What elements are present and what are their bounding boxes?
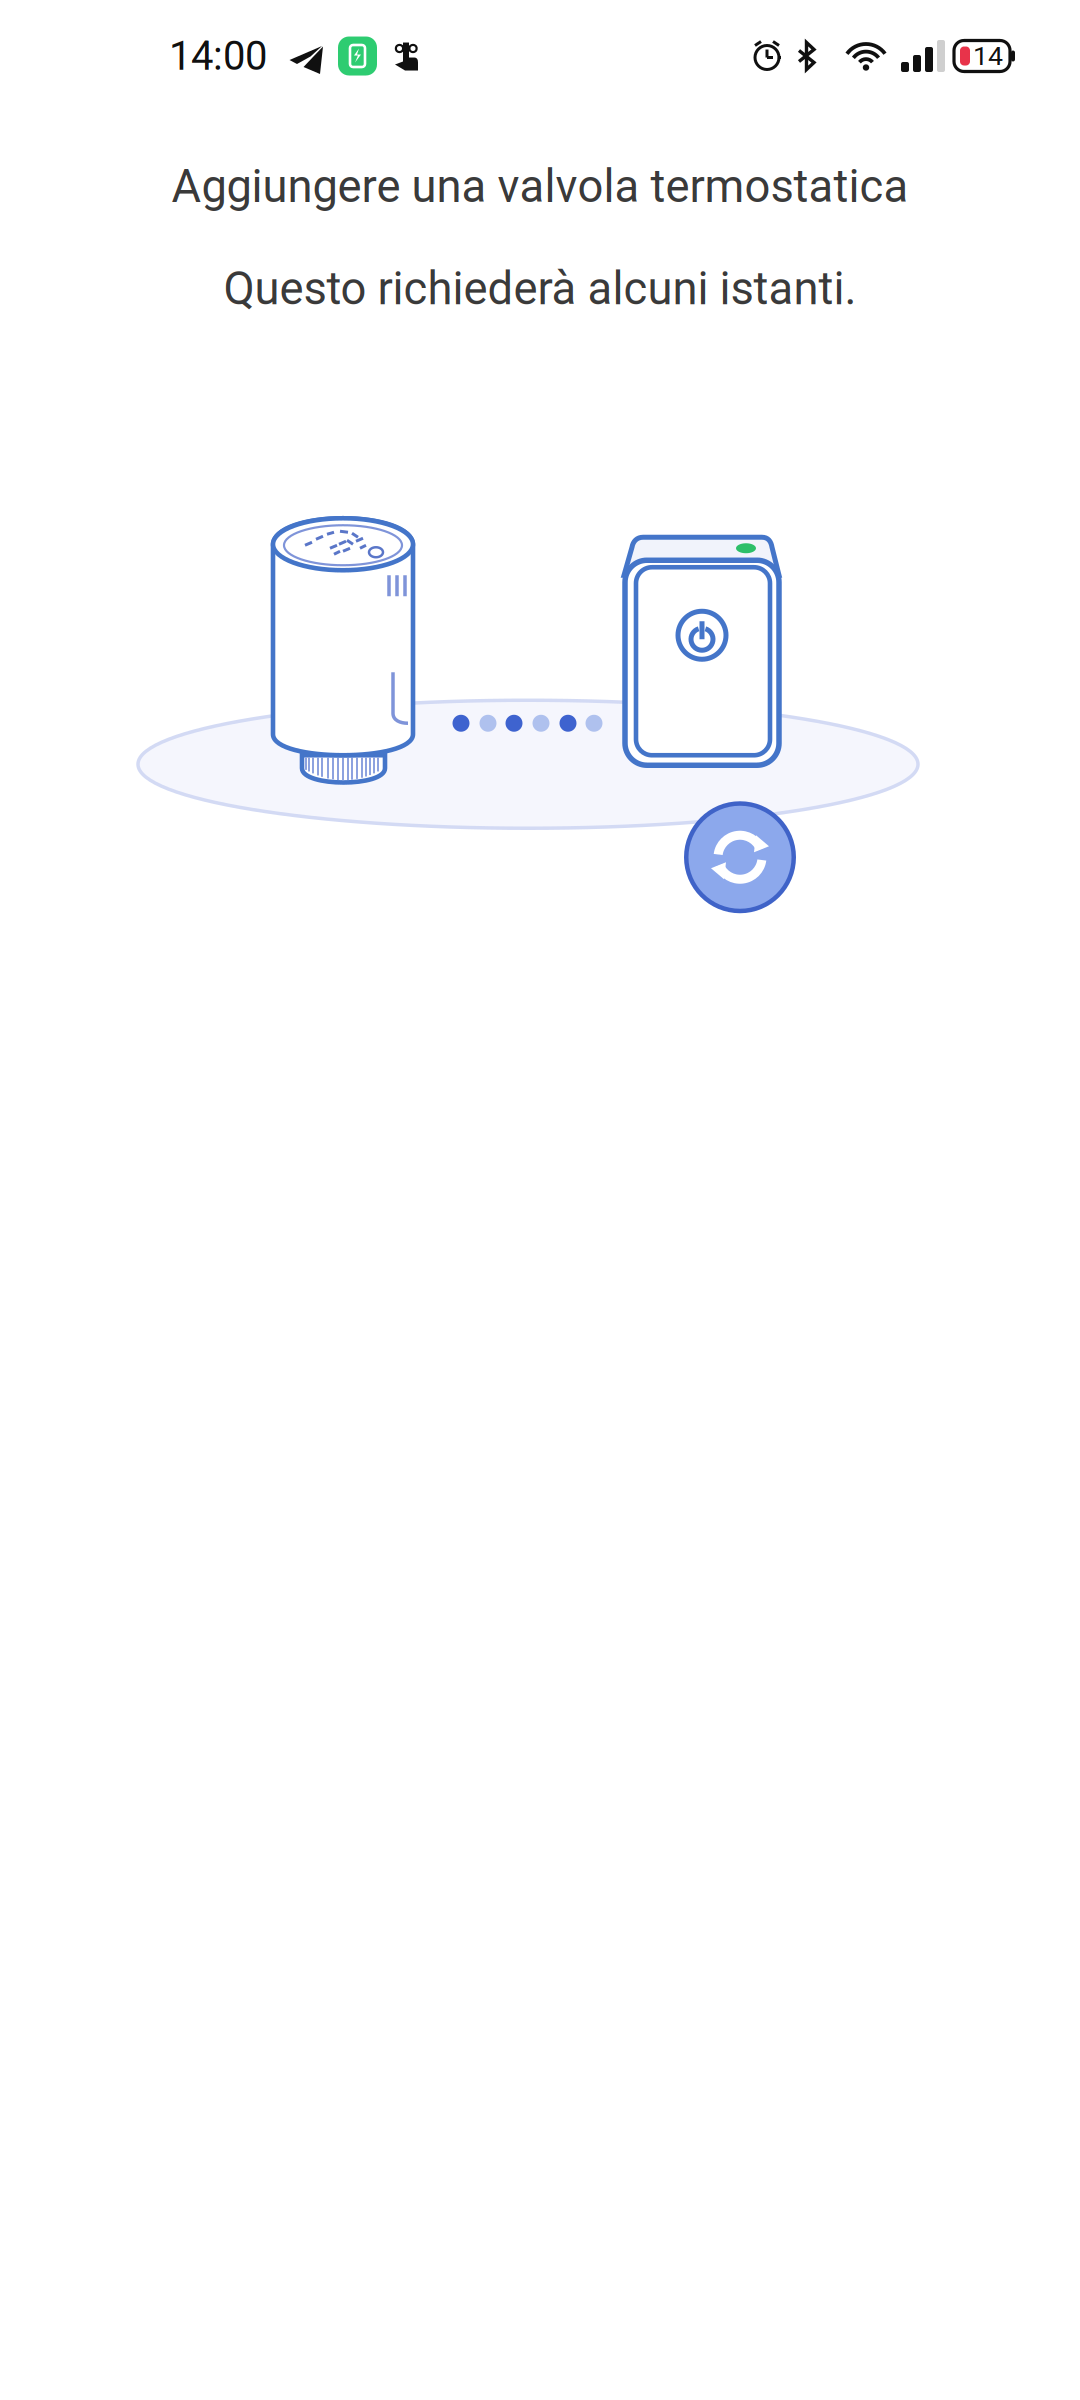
staticText: Aggiungere una valvola termostatica (171, 160, 908, 213)
staticText: Questo richiederà alcuni istanti. (223, 262, 856, 315)
staticText: 14:00 (169, 33, 267, 79)
staticText: 14 (973, 40, 1003, 72)
button[interactable]: Retry pairing (684, 801, 796, 913)
